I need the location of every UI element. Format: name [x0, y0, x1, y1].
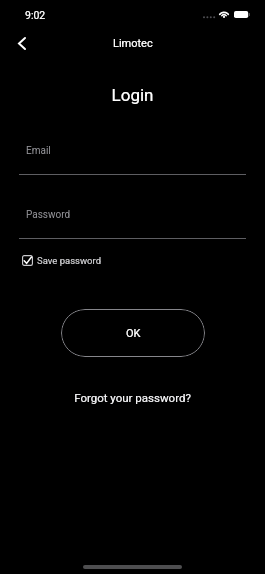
button[interactable]: Password	[19, 203, 246, 244]
staticText: Email	[26, 145, 51, 157]
staticText: 9:02	[25, 9, 46, 21]
button[interactable]: Email	[19, 139, 246, 180]
button[interactable]: OK	[61, 309, 205, 357]
button[interactable]: Forgot your password?	[0, 391, 265, 404]
button[interactable]: Save password	[22, 255, 102, 266]
staticText: Password	[26, 209, 71, 221]
button[interactable]: Back	[4, 28, 40, 58]
staticText: Limotec	[113, 37, 153, 50]
staticText: Login	[0, 85, 265, 105]
staticText: Save password	[37, 255, 102, 266]
staticText: OK	[126, 327, 141, 340]
